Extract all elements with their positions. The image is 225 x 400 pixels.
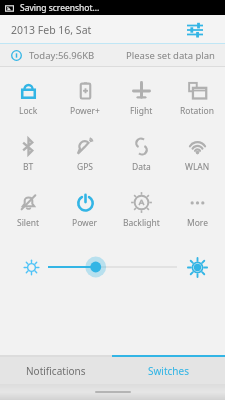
button[interactable]: Brightness <box>48 254 177 280</box>
button[interactable]: More <box>169 183 225 239</box>
staticText: WLAN <box>185 161 210 173</box>
staticText: Please set data plan <box>126 49 215 62</box>
staticText: Backlight <box>123 217 160 229</box>
staticText: Today:56.96KB <box>29 49 95 62</box>
button[interactable]: Lock <box>0 71 57 127</box>
staticText: Silent <box>17 217 40 229</box>
staticText: Saving screenshot... <box>20 2 100 14</box>
button[interactable]: Close panel <box>0 384 225 400</box>
staticText: Power <box>72 217 98 229</box>
button[interactable]: Today:56.96KB <box>0 44 225 67</box>
staticText: Flight <box>130 105 153 117</box>
button[interactable]: Backlight <box>113 183 169 239</box>
button[interactable]: Settings <box>178 15 212 44</box>
staticText: BT <box>23 161 34 173</box>
button[interactable]: Increase brightness <box>186 256 208 278</box>
button[interactable]: Notifications <box>0 357 112 384</box>
button[interactable]: Flight <box>113 71 169 127</box>
button[interactable]: Rotation <box>169 71 225 127</box>
staticText: Power+ <box>70 105 100 117</box>
staticText: More <box>187 217 208 229</box>
button[interactable]: Power+ <box>57 71 113 127</box>
button[interactable]: BT <box>0 127 57 183</box>
staticText: Data <box>132 161 151 173</box>
staticText: Lock <box>19 105 38 117</box>
staticText: GPS <box>77 161 93 173</box>
button[interactable]: Decrease brightness <box>22 258 40 276</box>
staticText: Notifications <box>26 364 86 378</box>
staticText: Rotation <box>180 105 214 117</box>
button[interactable]: Switches <box>112 357 225 384</box>
button[interactable]: Silent <box>0 183 57 239</box>
staticText: Switches <box>148 364 189 378</box>
button[interactable]: WLAN <box>169 127 225 183</box>
button[interactable]: GPS <box>57 127 113 183</box>
button[interactable]: Power <box>57 183 113 239</box>
staticText: 2013 Feb 16, Sat <box>11 23 92 37</box>
button[interactable]: Data <box>113 127 169 183</box>
